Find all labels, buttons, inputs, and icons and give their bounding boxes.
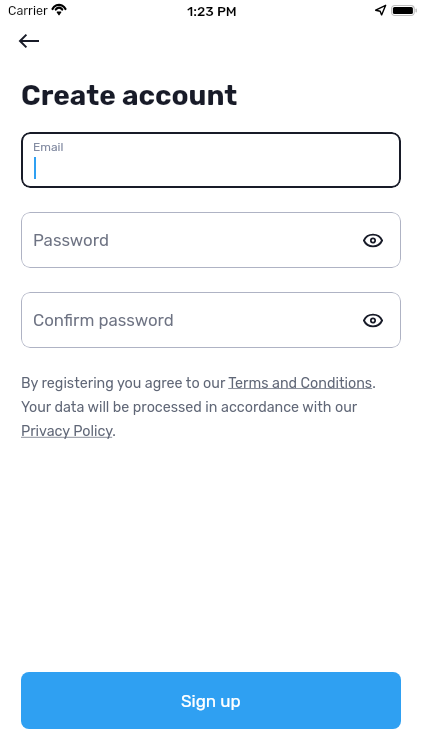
staticText: Create account bbox=[21, 79, 238, 112]
button[interactable]: Confirm password bbox=[21, 292, 401, 348]
staticText: 1:23 PM bbox=[187, 3, 237, 19]
staticText: By registering you agree to our Terms an… bbox=[21, 375, 376, 440]
button[interactable]: Password bbox=[21, 212, 401, 268]
button[interactable]: Back bbox=[7, 19, 51, 63]
staticText: Carrier bbox=[8, 3, 48, 18]
staticText: Password bbox=[33, 230, 109, 250]
staticText: Email bbox=[33, 140, 64, 154]
staticText: Sign up bbox=[181, 691, 241, 711]
button[interactable]: Email bbox=[21, 132, 401, 188]
button[interactable]: Show password bbox=[353, 300, 393, 340]
button[interactable]: Show password bbox=[353, 220, 393, 260]
staticText: Confirm password bbox=[33, 310, 174, 330]
button[interactable]: Sign up bbox=[21, 672, 401, 729]
